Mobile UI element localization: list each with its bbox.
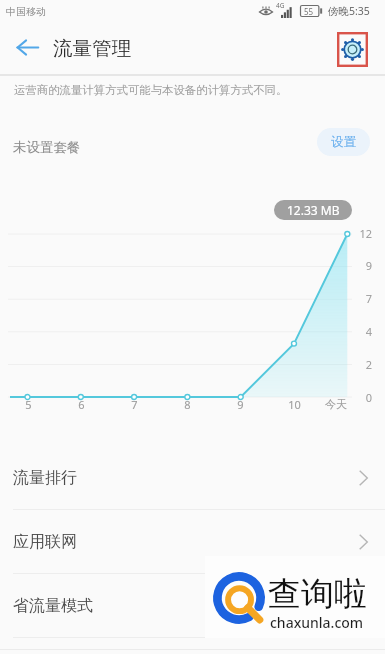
button[interactable]: 应用联网: [0, 510, 385, 574]
staticText: 中国移动: [6, 5, 46, 18]
staticText: 2: [365, 357, 372, 372]
staticText: 4: [365, 324, 372, 339]
staticText: chaxunla.com: [270, 613, 364, 632]
staticText: 设置: [331, 134, 356, 150]
staticText: 流量管理: [53, 36, 131, 61]
staticText: 5: [25, 397, 32, 412]
button[interactable]: Back: [8, 28, 46, 66]
staticText: 7: [365, 291, 372, 306]
staticText: 运营商的流量计算方式可能与本设备的计算方式不同。: [14, 83, 288, 97]
staticText: 省流量模式: [13, 596, 93, 616]
staticText: 9: [365, 258, 372, 273]
staticText: 7: [131, 397, 138, 412]
staticText: 10: [288, 397, 301, 412]
staticText: 55: [304, 6, 314, 17]
staticText: 8: [184, 397, 191, 412]
staticText: 4G: [276, 1, 285, 10]
staticText: 今天: [325, 397, 347, 411]
staticText: 应用联网: [13, 532, 77, 552]
staticText: 12: [359, 226, 372, 241]
button[interactable]: 省流量模式: [0, 574, 385, 638]
staticText: 12.33 MB: [287, 202, 340, 218]
staticText: 9: [237, 397, 244, 412]
staticText: 傍晚5:35: [328, 4, 370, 18]
staticText: 流量排行: [13, 468, 77, 488]
staticText: 6: [78, 397, 85, 412]
button[interactable]: 流量排行: [0, 446, 385, 510]
staticText: 查询啦: [268, 573, 367, 615]
staticText: 未设置套餐: [13, 139, 81, 156]
button[interactable]: Settings: [337, 32, 368, 67]
staticText: 0: [365, 390, 372, 405]
button[interactable]: 设置: [317, 128, 370, 156]
